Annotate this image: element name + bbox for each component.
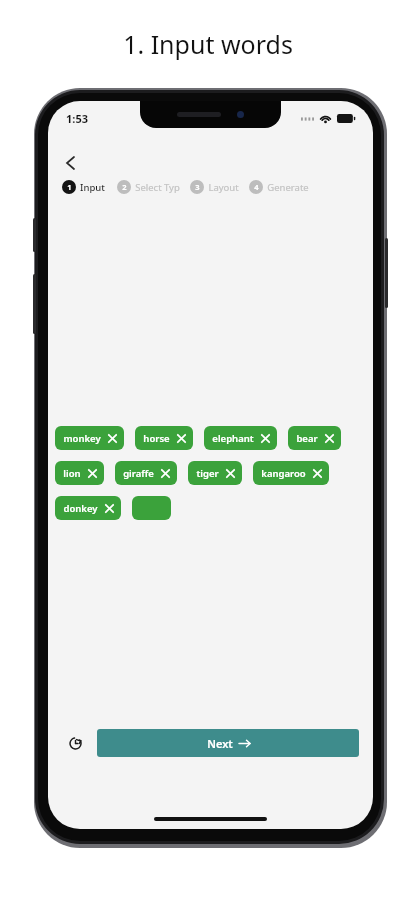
button[interactable]: History (60, 728, 90, 758)
button[interactable]: Add word (132, 496, 171, 520)
button[interactable]: lion (55, 461, 104, 485)
staticText: kangaroo (261, 467, 306, 480)
staticText: 1:53 (66, 111, 88, 126)
staticText: Next (207, 736, 233, 751)
staticText: 3 (195, 182, 200, 192)
staticText: Generate (267, 181, 309, 194)
staticText: Layout (208, 181, 239, 194)
button[interactable]: 2 (117, 180, 180, 194)
button[interactable]: 3 (190, 180, 239, 194)
button[interactable]: tiger (188, 461, 242, 485)
button[interactable]: monkey (55, 426, 124, 450)
staticText: giraffe (123, 467, 154, 480)
button[interactable]: 1 (62, 180, 105, 194)
staticText: 2 (122, 182, 127, 192)
button[interactable]: Next (97, 729, 359, 757)
staticText: monkey (63, 432, 101, 445)
staticText: Input (80, 181, 105, 194)
staticText: 4 (254, 182, 259, 192)
staticText: lion (63, 467, 81, 480)
staticText: elephant (212, 432, 254, 445)
staticText: bear (296, 432, 318, 445)
button[interactable]: 4 (249, 180, 309, 194)
button[interactable]: giraffe (115, 461, 177, 485)
button[interactable]: elephant (204, 426, 277, 450)
button[interactable]: kangaroo (253, 461, 329, 485)
staticText: horse (143, 432, 170, 445)
button[interactable]: Back (54, 147, 86, 179)
staticText: 1 (67, 182, 72, 192)
button[interactable]: horse (135, 426, 193, 450)
button[interactable]: bear (288, 426, 341, 450)
staticText: donkey (63, 502, 98, 515)
staticText: 1. Input words (123, 27, 293, 61)
staticText: Select Typ (135, 181, 180, 194)
button[interactable]: donkey (55, 496, 121, 520)
staticText: tiger (196, 467, 219, 480)
